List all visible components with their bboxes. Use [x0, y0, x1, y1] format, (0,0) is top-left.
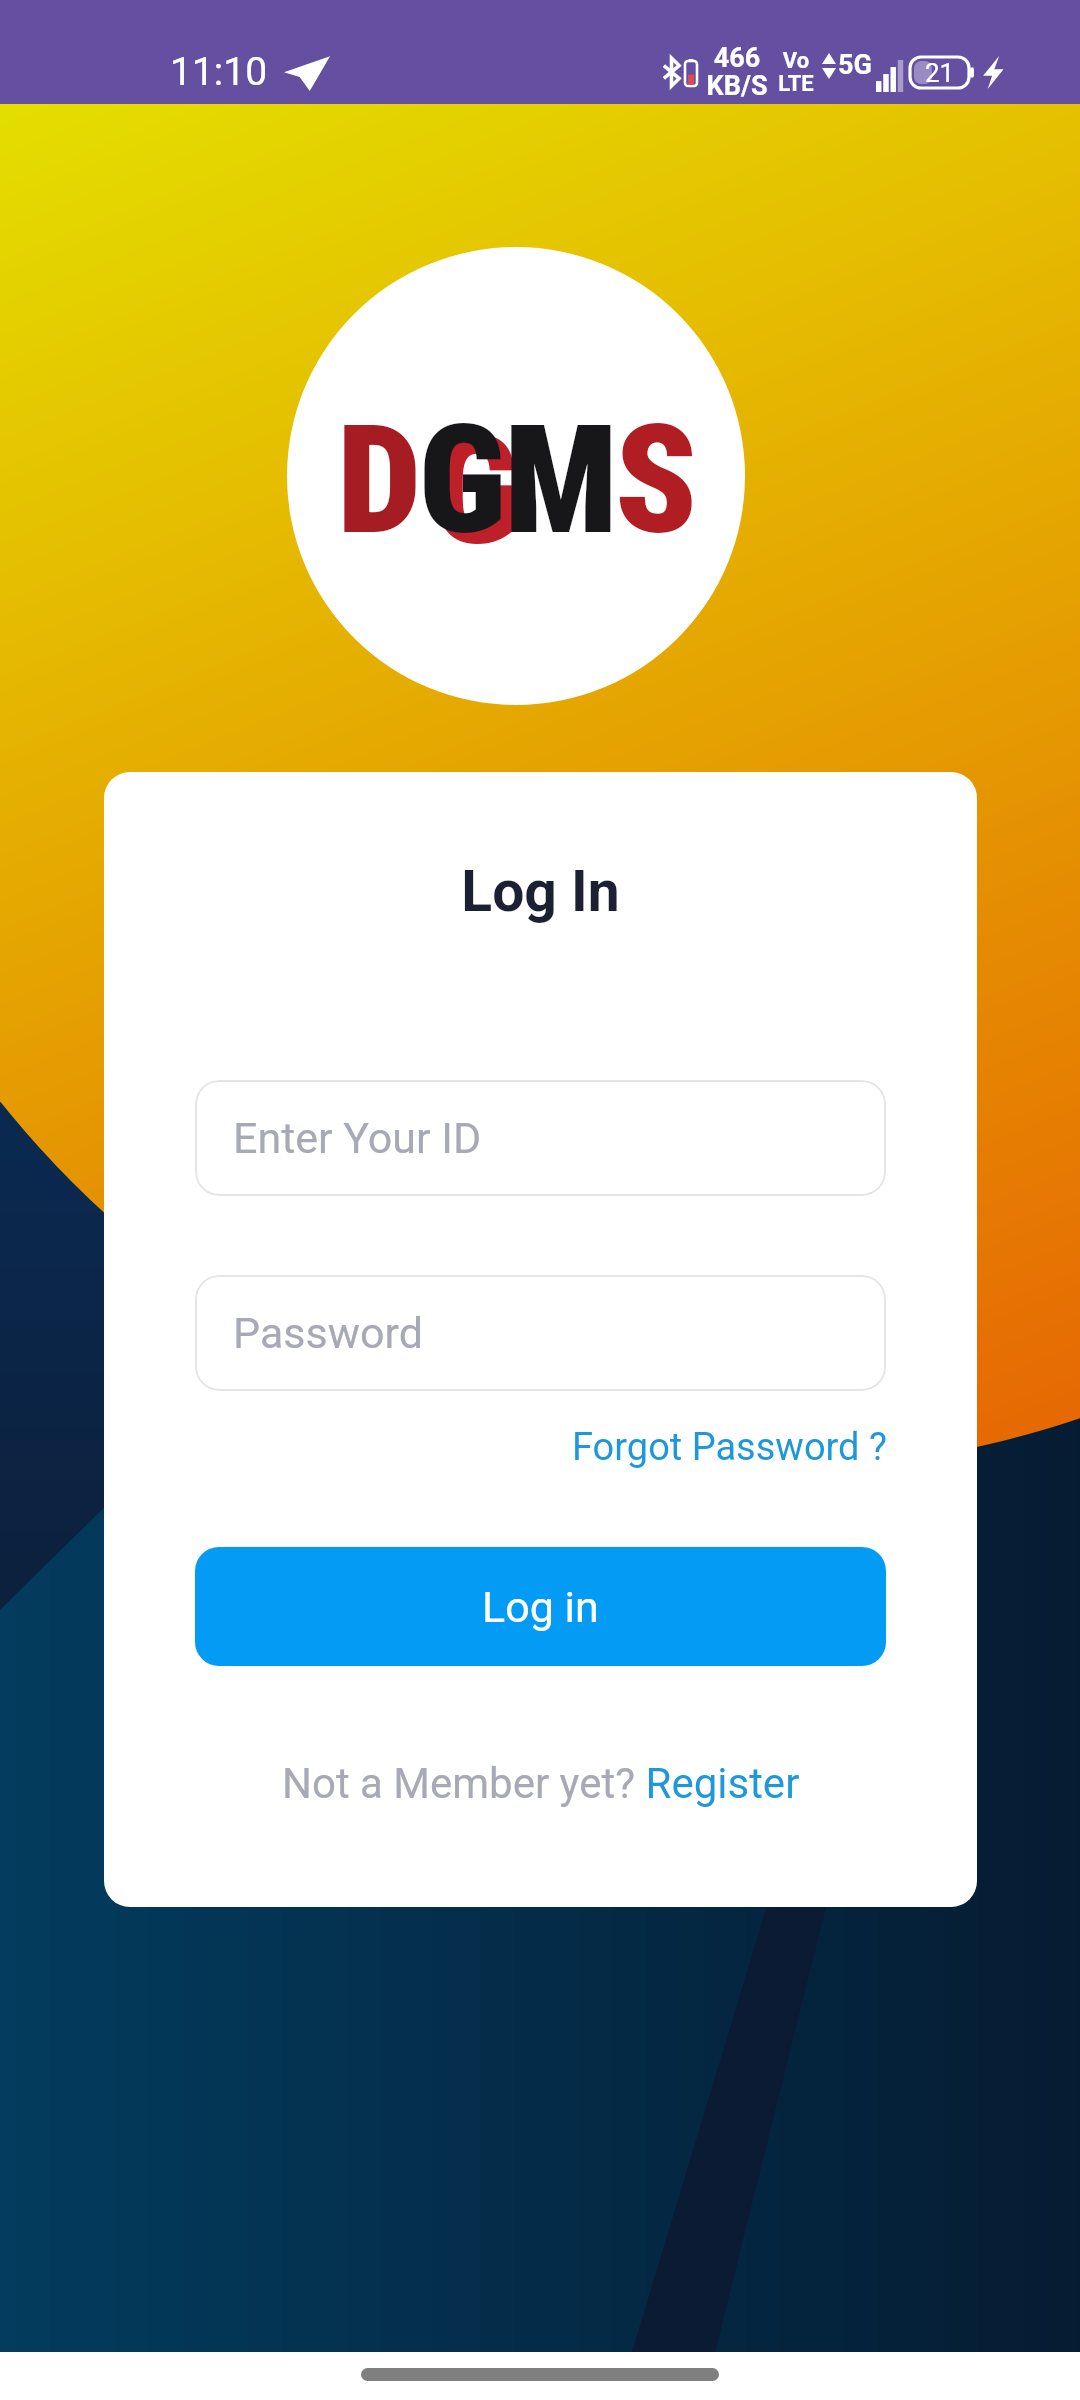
button[interactable]: Password [195, 1275, 886, 1391]
staticText: Log in [482, 1582, 599, 1632]
other: Telegram [284, 53, 330, 93]
staticText: 11:10 [170, 49, 268, 95]
staticText: DG [350, 404, 517, 580]
staticText: Enter Your ID [233, 1113, 482, 1163]
button[interactable]: Forgot Password ? [566, 1419, 893, 1476]
button[interactable]: Log in [195, 1547, 886, 1666]
staticText: DGMS [337, 393, 695, 569]
staticText: 21 [925, 58, 955, 88]
button[interactable]: Not a Member yet? Register [274, 1753, 808, 1814]
staticText: Forgot Password ? [572, 1425, 887, 1470]
staticText: 466 KB/S [706, 42, 768, 102]
staticText: Not a Member yet? Register [282, 1759, 800, 1808]
staticText: Vo LTE [778, 48, 814, 97]
staticText: 5G [838, 49, 872, 81]
staticText: Log In [104, 858, 977, 925]
staticText: Password [233, 1308, 423, 1358]
button[interactable]: Enter Your ID [195, 1080, 886, 1196]
